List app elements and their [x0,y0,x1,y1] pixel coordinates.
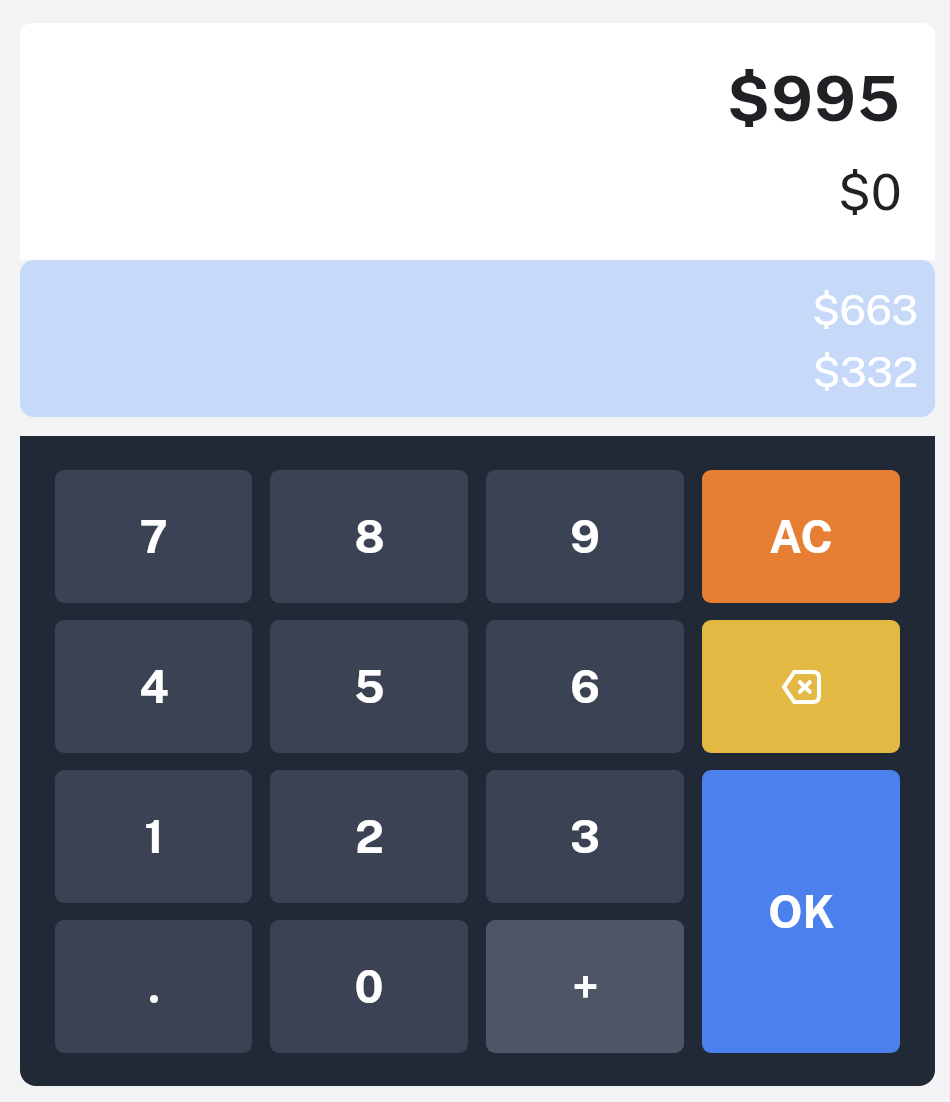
button[interactable]: 9 [486,470,684,603]
button[interactable]: 0 [270,920,468,1053]
staticText: 3 [570,810,600,863]
staticText: 4 [139,660,169,713]
staticText: AC [769,510,833,563]
staticText: $663 $332 [20,285,918,397]
staticText: 1 [144,810,164,863]
staticText: 5 [354,660,385,713]
staticText: 6 [570,660,600,713]
button[interactable]: 2 [270,770,468,903]
staticText: 9 [570,510,600,563]
button[interactable]: Decimal point [55,920,252,1053]
button[interactable]: 6 [486,620,684,753]
button[interactable]: OK [702,770,900,1053]
button[interactable]: 4 [55,620,252,753]
button[interactable]: 5 [270,620,468,753]
button[interactable]: + [486,920,684,1053]
staticText: 8 [354,510,385,563]
button[interactable]: Backspace [702,620,900,753]
button[interactable]: 7 [55,470,252,603]
staticText: $995 [727,61,902,135]
staticText: 0 [354,960,384,1013]
staticText: 2 [355,810,384,863]
staticText: $0 [838,162,902,221]
button[interactable]: 1 [55,770,252,903]
staticText: OK [768,885,835,938]
staticText: 7 [139,510,168,563]
button[interactable]: 3 [486,770,684,903]
button[interactable]: AC [702,470,900,603]
staticText: + [572,960,599,1013]
button[interactable]: 8 [270,470,468,603]
